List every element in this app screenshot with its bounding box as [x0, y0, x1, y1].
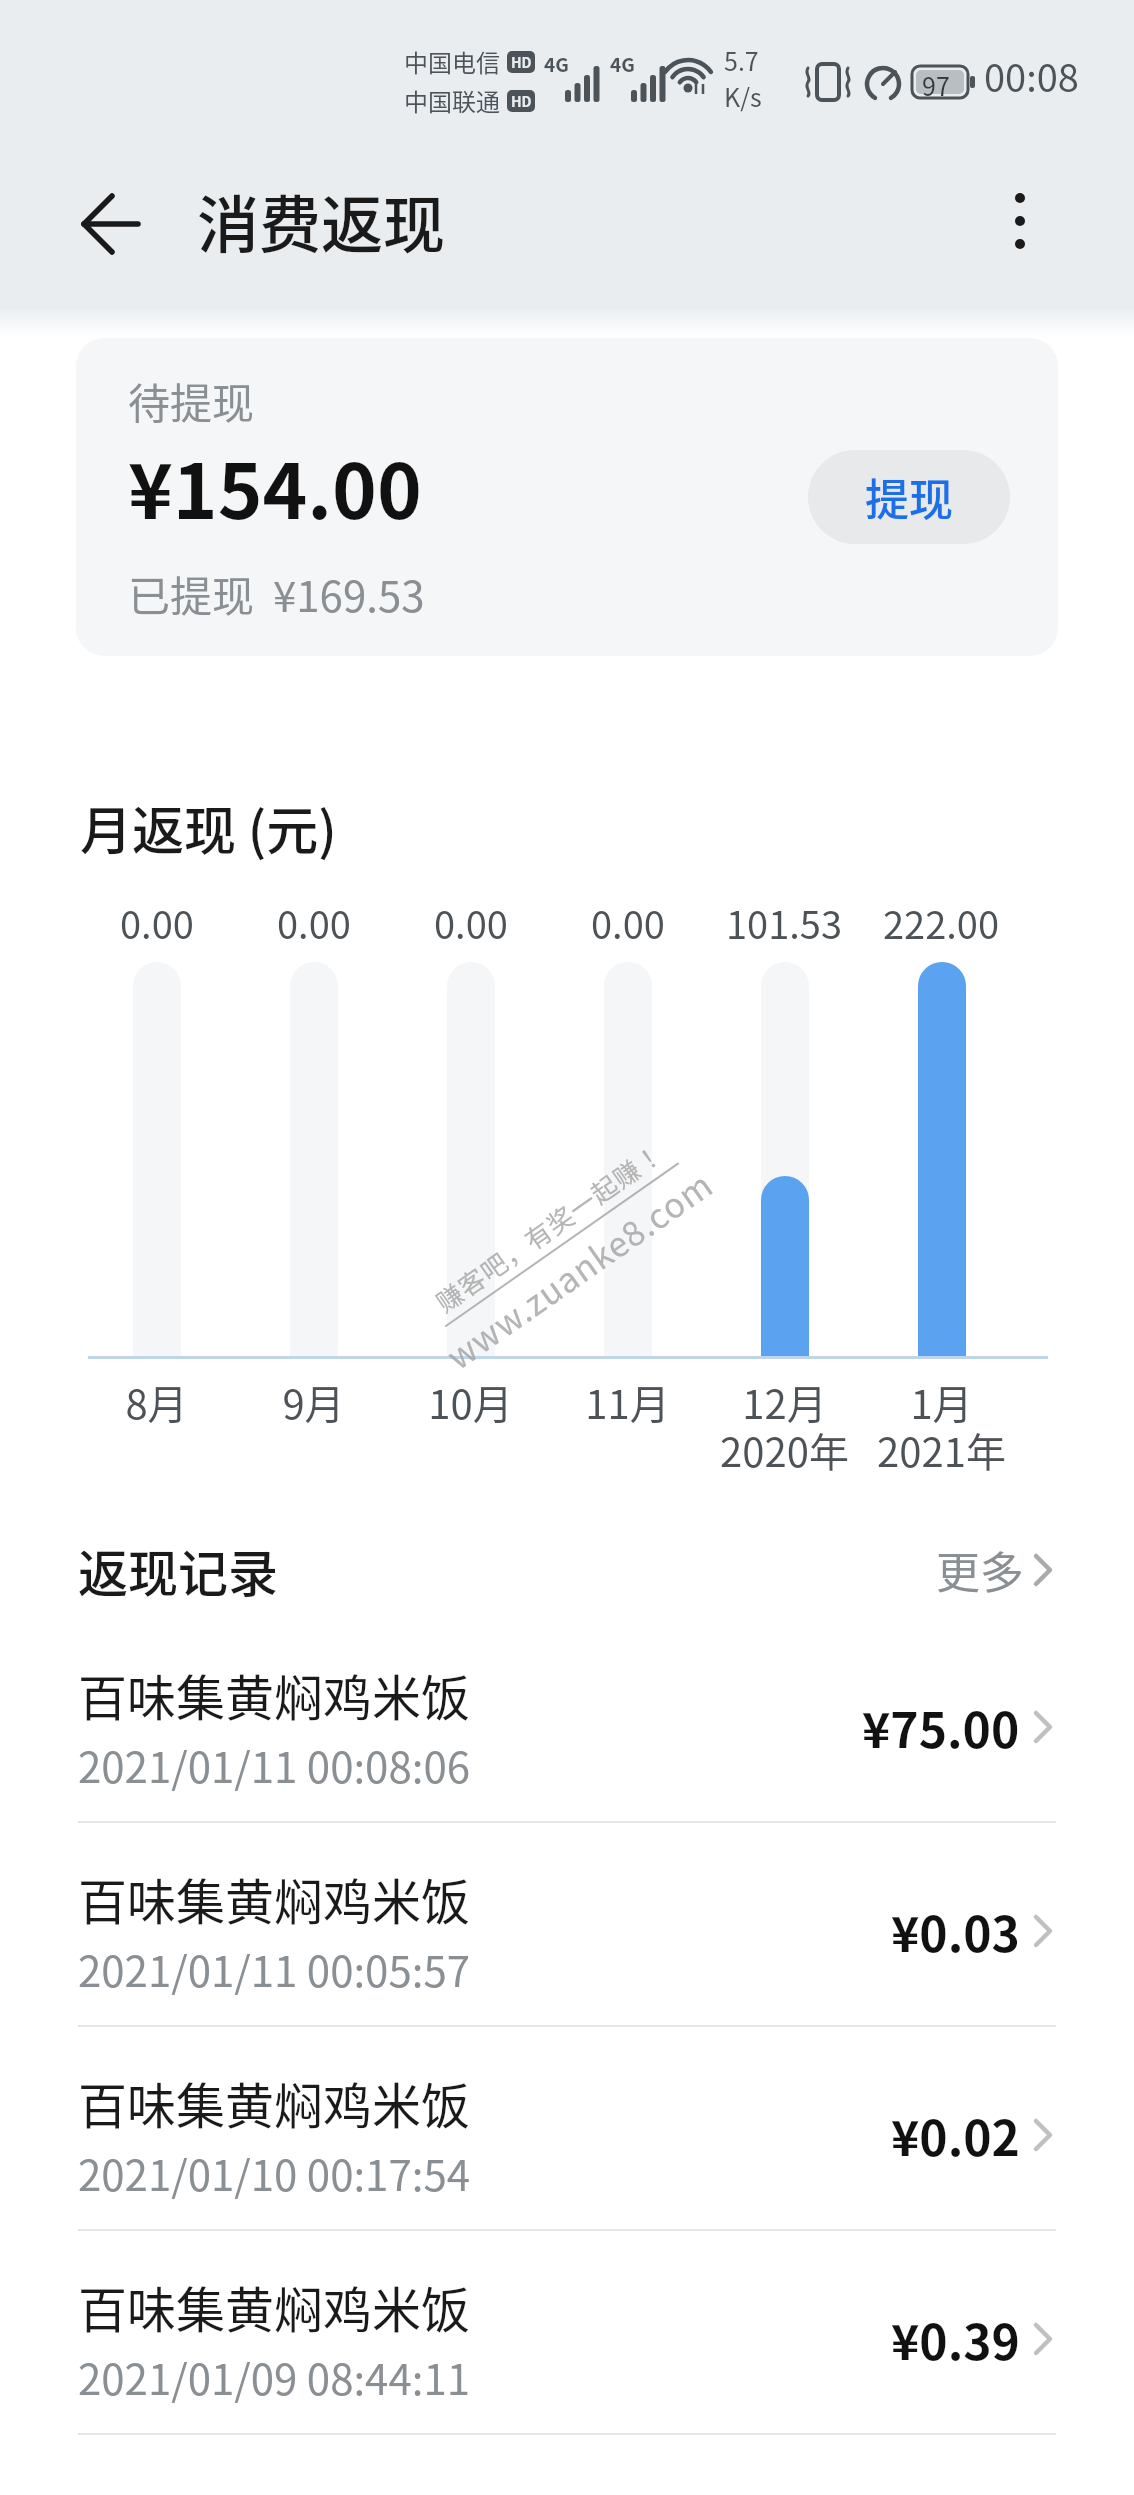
- staticText: 2021/01/11 00:08:06: [78, 1734, 471, 1795]
- staticText: 0.00: [434, 895, 508, 950]
- staticText: 0.00: [120, 895, 194, 950]
- staticText: www.zuanke8.com: [436, 1159, 722, 1379]
- button[interactable]: 百味集黄焖鸡米饭: [0, 2231, 1134, 2435]
- staticText: 4G: [610, 50, 635, 78]
- staticText: ¥154.00: [128, 431, 422, 541]
- staticText: 2021/01/10 00:17:54: [78, 2142, 471, 2203]
- staticText: 9月: [282, 1373, 345, 1431]
- staticText: ¥0.03: [891, 1896, 1020, 1966]
- button[interactable]: [1006, 192, 1034, 250]
- staticText: ¥75.00: [862, 1692, 1020, 1762]
- button[interactable]: [82, 187, 140, 261]
- staticText: 百味集黄焖鸡米饭: [78, 1659, 471, 1730]
- staticText: 2021/01/09 08:44:11: [78, 2346, 471, 2407]
- staticText: 百味集黄焖鸡米饭: [78, 2067, 471, 2138]
- button[interactable]: 百味集黄焖鸡米饭: [0, 1619, 1134, 1823]
- staticText: 222.00: [883, 895, 1000, 950]
- staticText: 5.7: [724, 42, 759, 78]
- staticText: 消费返现: [197, 176, 446, 266]
- staticText: 百味集黄焖鸡米饭: [78, 2271, 471, 2342]
- staticText: 00:08: [984, 48, 1079, 103]
- staticText: ¥0.39: [891, 2304, 1020, 2374]
- staticText: 已提现: [128, 563, 255, 624]
- staticText: 更多: [936, 1538, 1024, 1602]
- staticText: ¥0.02: [891, 2100, 1020, 2170]
- staticText: 赚客吧，有奖一起赚！: [427, 1133, 671, 1320]
- staticText: 中国电信: [404, 44, 500, 79]
- staticText: 1月 2021年: [877, 1373, 1006, 1478]
- button[interactable]: 百味集黄焖鸡米饭: [0, 2027, 1134, 2231]
- button[interactable]: 更多: [936, 1538, 1056, 1602]
- button[interactable]: 百味集黄焖鸡米饭: [0, 1823, 1134, 2027]
- staticText: ¥169.53: [273, 563, 425, 624]
- staticText: 4G: [544, 50, 569, 78]
- staticText: 百味集黄焖鸡米饭: [78, 1863, 471, 1934]
- staticText: 11月: [585, 1373, 670, 1431]
- staticText: HD: [511, 52, 532, 72]
- staticText: 0.00: [277, 895, 351, 950]
- staticText: 待提现: [128, 370, 255, 431]
- staticText: HD: [511, 91, 532, 111]
- staticText: 中国联通: [404, 83, 500, 118]
- staticText: 101.53: [726, 895, 843, 950]
- button[interactable]: 提现: [808, 450, 1010, 544]
- staticText: 月返现 (元): [80, 790, 337, 865]
- staticText: 10月: [428, 1373, 513, 1431]
- staticText: 2021/01/11 00:05:57: [78, 1938, 471, 1999]
- staticText: 8月: [125, 1373, 188, 1431]
- staticText: 0.00: [591, 895, 665, 950]
- staticText: 97: [922, 67, 950, 103]
- staticText: K/s: [724, 78, 762, 114]
- staticText: 提现: [865, 465, 953, 529]
- staticText: 12月 2020年: [720, 1373, 849, 1478]
- staticText: 返现记录: [78, 1534, 278, 1606]
